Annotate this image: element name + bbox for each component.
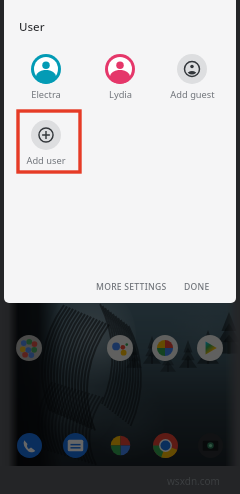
button[interactable]: Lydia xyxy=(86,50,154,101)
button[interactable]: Camera xyxy=(198,433,223,458)
button[interactable]: Chrome xyxy=(153,433,178,458)
button[interactable]: Photos xyxy=(108,433,133,458)
button[interactable]: Add guest xyxy=(158,50,226,101)
button[interactable]: Electra xyxy=(12,50,80,101)
button[interactable]: Google xyxy=(16,335,42,361)
staticText: wsxdn.com xyxy=(167,474,220,488)
button[interactable]: Phone xyxy=(17,433,42,458)
staticText: Electra xyxy=(31,88,61,101)
staticText: Add user xyxy=(26,154,66,167)
staticText: MORE SETTINGS xyxy=(96,281,167,293)
button[interactable]: Add user xyxy=(12,116,80,167)
staticText: DONE xyxy=(184,281,210,293)
button[interactable]: DONE xyxy=(176,275,218,299)
button[interactable]: Assistant xyxy=(107,335,133,361)
staticText: Add guest xyxy=(170,88,215,101)
staticText: User xyxy=(19,19,45,35)
button[interactable]: MORE SETTINGS xyxy=(88,275,175,299)
staticText: Lydia xyxy=(109,88,132,101)
button[interactable]: Photos xyxy=(152,335,178,361)
button[interactable]: Messages xyxy=(63,433,88,458)
button[interactable]: Play Store xyxy=(197,335,223,361)
